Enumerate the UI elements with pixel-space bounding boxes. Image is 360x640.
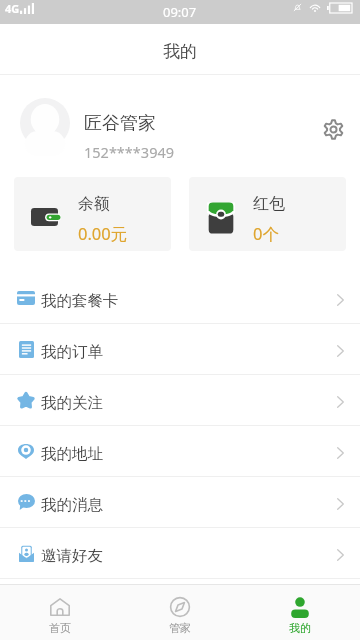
staticText: 我的关注 bbox=[41, 393, 103, 413]
button[interactable]: 我的地址 bbox=[0, 426, 360, 477]
staticText: 我的消息 bbox=[41, 495, 103, 515]
staticText: 我的 bbox=[289, 621, 311, 635]
button[interactable]: 红包 bbox=[189, 177, 346, 251]
staticText: 我的订单 bbox=[41, 342, 103, 362]
staticText: 09:07 bbox=[163, 3, 197, 21]
button[interactable]: 我的关注 bbox=[0, 375, 360, 426]
button[interactable]: 管家 bbox=[120, 585, 240, 640]
staticText: 余额 bbox=[78, 194, 110, 214]
staticText: 红包 bbox=[253, 194, 285, 214]
button[interactable]: 我的 bbox=[240, 585, 360, 640]
button[interactable]: 邀请好友 bbox=[0, 528, 360, 579]
staticText: 我的地址 bbox=[41, 444, 103, 464]
button[interactable]: 我的消息 bbox=[0, 477, 360, 528]
staticText: 0个 bbox=[253, 222, 279, 245]
staticText: 0.00元 bbox=[78, 222, 128, 245]
staticText: 我的 bbox=[163, 41, 197, 62]
staticText: 我的套餐卡 bbox=[41, 291, 119, 311]
button[interactable]: 余额 bbox=[14, 177, 171, 251]
button[interactable]: 我的套餐卡 bbox=[0, 273, 360, 324]
button[interactable]: 首页 bbox=[0, 585, 120, 640]
staticText: 首页 bbox=[49, 621, 71, 635]
button[interactable]: 我的订单 bbox=[0, 324, 360, 375]
button[interactable]: Settings bbox=[313, 109, 353, 149]
staticText: 匠谷管家 bbox=[84, 112, 156, 135]
staticText: 152****3949 bbox=[84, 142, 175, 162]
staticText: 管家 bbox=[169, 621, 191, 635]
staticText: 邀请好友 bbox=[41, 546, 103, 566]
staticText: 4G bbox=[5, 1, 20, 16]
button[interactable]: 匠谷管家 bbox=[0, 75, 360, 177]
